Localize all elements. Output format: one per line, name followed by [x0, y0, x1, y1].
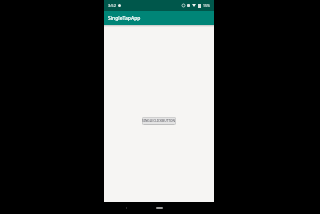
staticText: 3:52 — [108, 3, 116, 8]
staticText: 15% — [203, 3, 210, 8]
staticText: SingleTapApp — [108, 15, 141, 22]
button[interactable]: SingleTapApp — [104, 11, 214, 25]
button[interactable]: SINGLECLICKBUTTON — [142, 117, 176, 125]
staticText: SINGLECLICKBUTTON — [142, 119, 176, 123]
button[interactable] — [156, 207, 163, 209]
